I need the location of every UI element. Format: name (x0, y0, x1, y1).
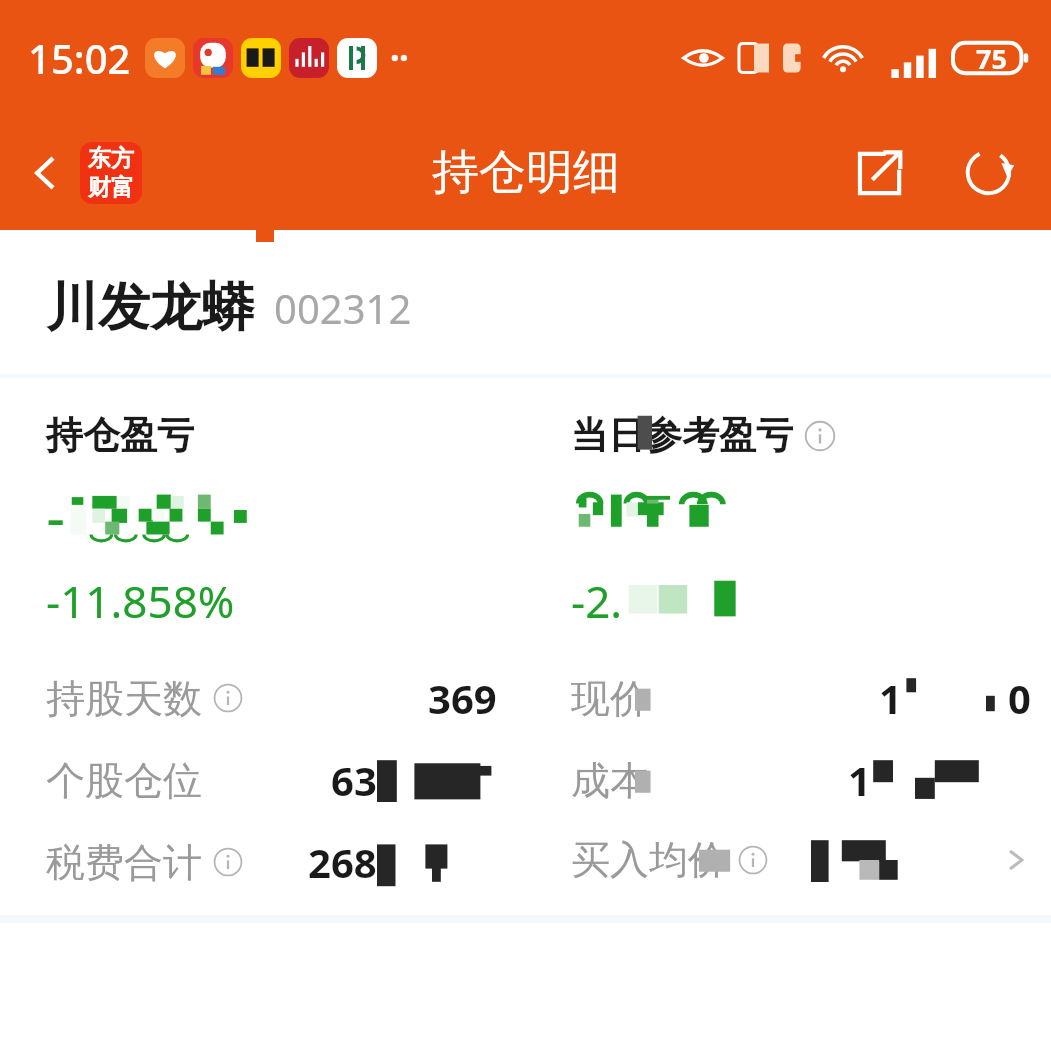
staticText: 1 (848, 753, 871, 807)
button[interactable]: Refresh (951, 135, 1027, 211)
staticText: 002312 (274, 281, 412, 335)
staticText: 268 (308, 835, 377, 889)
staticText: 持股天数 (46, 674, 202, 723)
staticText: 0 (1008, 671, 1031, 725)
staticText: 63 (331, 753, 377, 807)
staticText: 税费合计 (46, 838, 202, 887)
staticText: 成本 (571, 756, 649, 805)
button[interactable]: 个股仓位 (0, 753, 1051, 807)
staticText: 买入均价 (571, 835, 727, 884)
staticText: 财富 (88, 173, 134, 202)
staticText: -11.858% (46, 571, 235, 631)
button[interactable]: Back (0, 134, 154, 212)
button[interactable]: 持股天数 (0, 671, 1051, 725)
staticText: 75 (976, 40, 1007, 77)
staticText: 当日参考盈亏 (571, 412, 793, 459)
staticText: -2. (571, 571, 623, 631)
staticText: 15:02 (28, 31, 131, 85)
button[interactable]: Share (841, 135, 917, 211)
staticText: 1 (879, 671, 902, 725)
staticText: 个股仓位 (46, 756, 202, 805)
staticText: 369 (428, 671, 497, 725)
staticText: 持仓盈亏 (46, 412, 194, 459)
staticText: 持仓明细 (432, 143, 620, 202)
button[interactable]: 税费合计 (0, 835, 1051, 889)
staticText: 现价 (571, 674, 649, 723)
staticText: 川发龙蟒 (46, 275, 254, 341)
staticText: 东方 (88, 144, 134, 173)
